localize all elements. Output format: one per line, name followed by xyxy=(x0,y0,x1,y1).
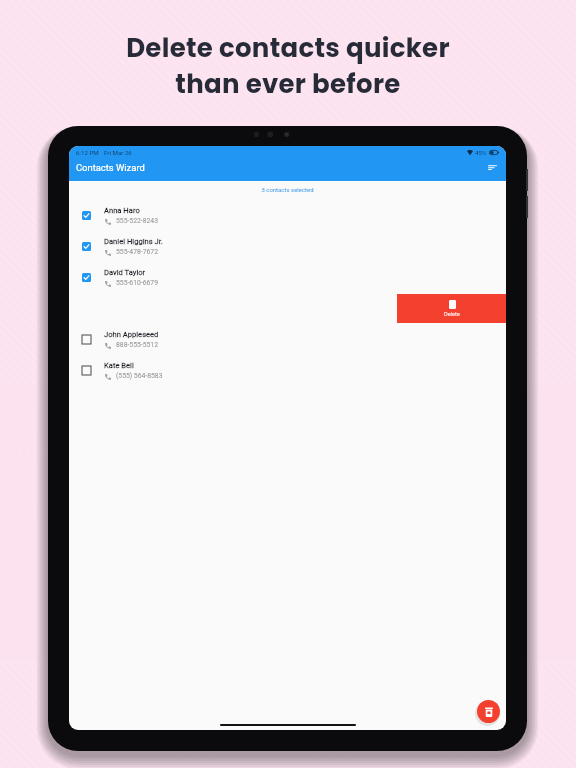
staticText: Anna Haro xyxy=(104,206,140,215)
staticText: 888-555-5512 xyxy=(116,341,158,349)
staticText: Daniel Higgins Jr. xyxy=(104,237,163,246)
staticText: 555-478-7672 xyxy=(116,248,158,256)
staticText: Contacts Wizard xyxy=(76,162,145,173)
staticText: 6:12 PM xyxy=(76,149,99,156)
button[interactable]: Daniel Higgins Jr. xyxy=(69,231,506,262)
staticText: John Appleseed xyxy=(104,330,159,339)
button[interactable]: Kate Bell xyxy=(69,355,506,386)
staticText: Fri Mar 26 xyxy=(104,149,132,156)
staticText: Delete xyxy=(444,311,460,318)
staticText: Kate Bell xyxy=(104,361,134,370)
button[interactable]: Delete selected contacts xyxy=(477,700,500,723)
staticText: Delete contacts quicker than ever before xyxy=(126,30,450,102)
staticText: 555-610-6679 xyxy=(116,279,158,287)
button[interactable]: Anna Haro xyxy=(69,200,506,231)
button[interactable]: David Taylor xyxy=(69,262,506,293)
staticText: 45% xyxy=(475,149,487,156)
button[interactable]: Sort xyxy=(486,161,499,174)
staticText: 3 contacts selected xyxy=(69,186,506,193)
button[interactable]: John Appleseed xyxy=(69,324,506,355)
staticText: 555-522-8243 xyxy=(116,217,158,225)
button[interactable]: Delete xyxy=(397,294,506,323)
staticText: (555) 564-8583 xyxy=(116,372,163,380)
staticText: David Taylor xyxy=(104,268,146,277)
